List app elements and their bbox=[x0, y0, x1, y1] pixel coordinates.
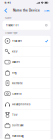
staticText: Wallet bbox=[12, 60, 20, 64]
button[interactable]: Bag bbox=[2, 67, 50, 78]
button[interactable]: Suitcase bbox=[2, 120, 50, 131]
staticText: Camera bbox=[12, 92, 21, 95]
staticText: Remote bbox=[12, 82, 23, 85]
staticText: Name the Device bbox=[13, 9, 40, 12]
button[interactable]: Save bbox=[44, 7, 50, 14]
button[interactable]: Headphones bbox=[2, 99, 50, 110]
staticText: Suitcase bbox=[12, 124, 24, 127]
button[interactable]: Back bbox=[3, 7, 9, 14]
button[interactable]: Toy bbox=[2, 110, 50, 120]
button[interactable]: Clear text bbox=[44, 23, 48, 27]
staticText: 9:41 bbox=[4, 1, 10, 4]
staticText: Tracker bbox=[12, 39, 22, 43]
staticText: Handbag bbox=[12, 134, 24, 137]
button[interactable]: Handbag bbox=[2, 131, 50, 140]
staticText: Bag bbox=[12, 71, 17, 74]
staticText: Key bbox=[12, 50, 17, 53]
staticText: Toy bbox=[12, 113, 17, 116]
staticText: Choose Type bbox=[5, 32, 17, 35]
button[interactable]: Camera bbox=[2, 88, 50, 99]
button[interactable]: Tracker bbox=[2, 36, 50, 46]
staticText: Name bbox=[5, 17, 11, 20]
staticText: Tracker 01 bbox=[5, 24, 18, 27]
button[interactable]: Remote bbox=[2, 78, 50, 88]
button[interactable]: Wallet bbox=[2, 57, 50, 67]
staticText: Save bbox=[44, 9, 50, 12]
button[interactable]: Key bbox=[2, 46, 50, 57]
staticText: Headphones bbox=[12, 103, 30, 106]
